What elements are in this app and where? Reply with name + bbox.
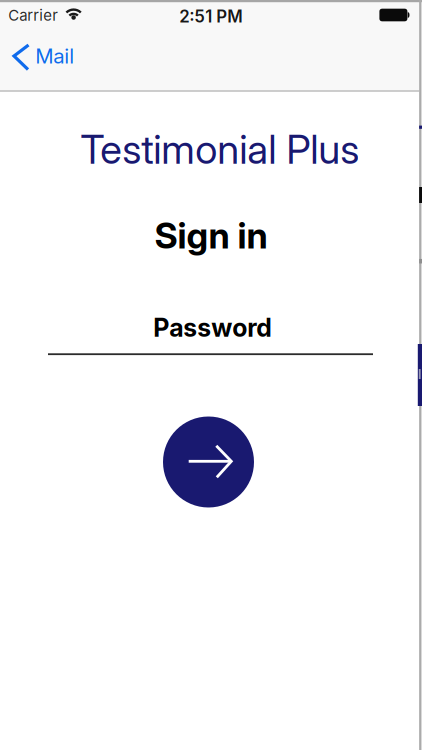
staticText: 2:51 PM bbox=[179, 6, 242, 26]
staticText: Mail bbox=[35, 44, 74, 68]
button[interactable]: Mail bbox=[5, 41, 83, 73]
staticText: Password bbox=[153, 312, 272, 343]
button[interactable]: Password bbox=[48, 302, 373, 356]
button[interactable]: Sign in bbox=[163, 416, 254, 507]
staticText: Sign in bbox=[154, 214, 267, 257]
staticText: Testimonial Plus bbox=[80, 125, 359, 173]
staticText: Carrier bbox=[8, 6, 58, 24]
